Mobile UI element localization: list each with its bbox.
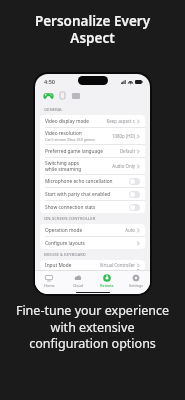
staticText: Keep aspect r.	[106, 118, 135, 124]
staticText: Microphone echo cancellation	[45, 178, 129, 185]
staticText: Virtual Controller	[99, 262, 135, 268]
staticText: Can't stream Xbox 360 games	[45, 137, 95, 142]
button[interactable]: Show connection stats	[129, 204, 140, 211]
button[interactable]: Start with party chat enabled	[129, 191, 140, 198]
staticText: ON-SCREEN CONTROLLER	[44, 216, 96, 222]
staticText: Show connection stats	[45, 204, 129, 211]
button[interactable]: Cloud	[63, 271, 92, 290]
staticText: Cloud	[73, 283, 83, 288]
staticText: Auto	[125, 227, 135, 233]
staticText: Video resolution	[45, 130, 82, 137]
button[interactable]: Configure layouts	[40, 237, 145, 249]
button[interactable]: Start with party chat enabled	[40, 188, 145, 200]
staticText: Personalize Every Aspect	[12, 12, 173, 47]
button[interactable]: Microphone echo cancellation	[129, 178, 140, 185]
staticText: Start with party chat enabled	[45, 191, 129, 198]
staticText: MOUSE & KEYBOARD	[44, 252, 86, 258]
button[interactable]: Microphone echo cancellation	[40, 175, 145, 187]
button[interactable]: Operation mode	[40, 224, 145, 236]
staticText: Home	[44, 283, 55, 288]
button[interactable]: Preferred game language	[40, 145, 145, 157]
staticText: Preferred game language	[45, 148, 103, 155]
staticText: Remote	[100, 283, 114, 288]
button[interactable]: Video display mode	[40, 115, 145, 127]
staticText: Fine-tune your experience with extensive…	[13, 302, 172, 351]
button[interactable]: Home	[35, 271, 63, 290]
button[interactable]: Settings	[121, 271, 150, 290]
button[interactable]: Show connection stats	[40, 201, 145, 213]
staticText: Configure layouts	[45, 240, 85, 247]
button[interactable]: Remote	[92, 271, 121, 290]
staticText: Operation mode	[45, 227, 83, 234]
staticText: GENERAL	[44, 107, 63, 113]
button[interactable]: Video resolution	[40, 128, 145, 144]
staticText: Audio Only	[112, 163, 135, 169]
button[interactable]: Phone	[59, 91, 66, 100]
staticText: Default	[119, 148, 135, 154]
button[interactable]: Input Mode	[40, 260, 145, 270]
staticText: Switching apps while streaming	[45, 160, 82, 172]
staticText: Video display mode	[45, 118, 90, 125]
staticText: Input Mode	[45, 262, 72, 269]
button[interactable]: Keyboard	[71, 91, 80, 100]
staticText: 1080p (HD)	[112, 133, 135, 139]
staticText: Settings	[129, 283, 143, 288]
staticText: 4:50	[44, 78, 55, 85]
button[interactable]: Controller	[43, 91, 54, 100]
button[interactable]: Switching apps while streaming	[40, 158, 145, 174]
